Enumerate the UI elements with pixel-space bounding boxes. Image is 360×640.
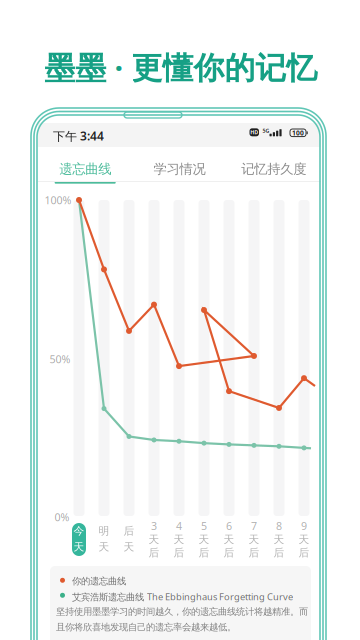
button[interactable]: 8 <box>268 522 290 556</box>
staticText: 5 <box>201 519 207 533</box>
staticText: 天 <box>173 533 184 546</box>
button[interactable]: 今 <box>68 522 90 556</box>
button[interactable]: 5 <box>193 522 215 556</box>
staticText: 后 <box>298 546 309 559</box>
staticText: 艾宾浩斯遗忘曲线 The Ebbinghaus Forgetting Curve <box>72 590 293 603</box>
staticText: 4 <box>176 519 182 533</box>
staticText: 今 <box>73 524 84 538</box>
staticText: 3 <box>151 519 157 533</box>
staticText: 天 <box>73 540 84 553</box>
button[interactable]: 学习情况 <box>132 147 227 182</box>
staticText: 下午 3:44 <box>53 128 104 144</box>
staticText: HD <box>250 129 258 136</box>
button[interactable]: 3 <box>143 522 165 556</box>
staticText: 你的遗忘曲线 <box>72 575 126 587</box>
staticText: 天 <box>98 540 109 553</box>
staticText: 0% <box>54 510 69 524</box>
staticText: 50% <box>49 352 70 366</box>
staticText: 遗忘曲线 <box>59 161 111 177</box>
staticText: 学习情况 <box>153 161 205 177</box>
staticText: 后 <box>123 524 134 538</box>
staticText: 天 <box>298 533 309 546</box>
staticText: 9 <box>301 519 307 533</box>
staticText: 7 <box>251 519 257 533</box>
staticText: 后 <box>273 546 284 559</box>
button[interactable]: 9 <box>293 522 315 556</box>
staticText: 天 <box>148 533 159 546</box>
staticText: 100% <box>44 193 71 207</box>
button[interactable]: 4 <box>168 522 190 556</box>
staticText: 天 <box>223 533 234 546</box>
staticText: 后 <box>223 546 234 559</box>
staticText: 后 <box>198 546 209 559</box>
button[interactable]: 遗忘曲线 <box>38 147 132 182</box>
staticText: 坚持使用墨墨学习的时间越久，你的遗忘曲线统计将越精准。而 <box>56 606 308 617</box>
staticText: 且你将欣喜地发现自己的遗忘率会越来越低。 <box>56 621 236 633</box>
staticText: 后 <box>248 546 259 559</box>
staticText: 墨墨 · 更懂你的记忆 <box>44 47 317 87</box>
button[interactable]: 后 <box>118 522 140 556</box>
button[interactable]: 6 <box>218 522 240 556</box>
button[interactable]: 记忆持久度 <box>227 147 321 182</box>
staticText: 8 <box>276 519 282 533</box>
staticText: 6 <box>226 519 232 533</box>
button[interactable]: 明 <box>93 522 115 556</box>
staticText: 后 <box>148 546 159 559</box>
staticText: 天 <box>248 533 259 546</box>
staticText: 后 <box>173 546 184 559</box>
staticText: 明 <box>98 524 109 538</box>
staticText: 100 <box>292 128 304 137</box>
staticText: 5G <box>262 127 269 134</box>
staticText: 天 <box>198 533 209 546</box>
button[interactable]: 7 <box>243 522 265 556</box>
staticText: 记忆持久度 <box>241 161 306 177</box>
staticText: 天 <box>273 533 284 546</box>
staticText: 天 <box>123 540 134 553</box>
